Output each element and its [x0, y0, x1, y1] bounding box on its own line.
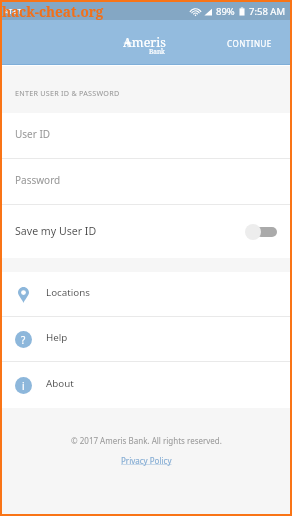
- button[interactable]: User ID: [2, 113, 290, 159]
- staticText: © 2017 Ameris Bank. All rights reserved.: [71, 435, 222, 446]
- staticText: 7:58 AM: [249, 5, 286, 18]
- staticText: ENTER USER ID & PASSWORD: [15, 88, 120, 98]
- staticText: 89%: [216, 5, 235, 18]
- staticText: Help: [46, 331, 68, 344]
- button[interactable]: Password: [2, 159, 290, 205]
- staticText: ?: [21, 333, 26, 347]
- button[interactable]: Privacy Policy: [121, 455, 172, 466]
- button[interactable]: ?: [2, 317, 290, 362]
- staticText: About: [46, 377, 74, 390]
- staticText: Bank: [149, 47, 165, 56]
- staticText: Locations: [46, 286, 90, 299]
- staticText: i: [22, 379, 25, 393]
- button[interactable]: i: [2, 362, 290, 408]
- button[interactable]: Locations: [2, 272, 290, 317]
- staticText: User ID: [15, 127, 51, 141]
- staticText: Save my User ID: [15, 224, 97, 238]
- button[interactable]: CONTINUE: [213, 26, 290, 61]
- staticText: Ameris: [123, 34, 166, 51]
- button[interactable]: Save my User ID: [2, 205, 290, 258]
- staticText: CONTINUE: [227, 38, 272, 49]
- staticText: AT&T: [4, 6, 22, 16]
- staticText: Password: [15, 173, 61, 187]
- staticText: hack-cheat.org: [2, 3, 104, 21]
- staticText: Privacy Policy: [121, 455, 172, 466]
- other: Save my User ID toggle: [245, 223, 277, 241]
